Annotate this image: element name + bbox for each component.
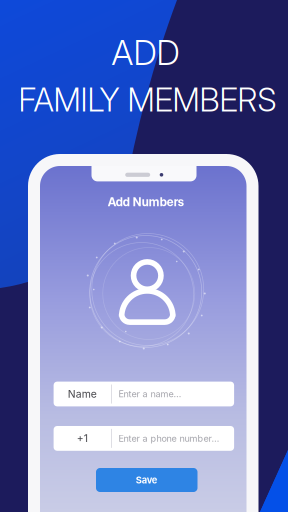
button[interactable]: +1 [54, 426, 234, 451]
staticText: FAMILY MEMBERS [18, 80, 276, 119]
staticText: +1 [77, 432, 88, 445]
button[interactable]: Name [54, 382, 234, 406]
staticText: Enter a phone number… [118, 433, 219, 444]
staticText: Name [68, 388, 97, 400]
staticText: ADD [111, 32, 179, 73]
staticText: Enter a name… [118, 388, 181, 399]
staticText: Save [136, 474, 158, 486]
button[interactable]: Save [96, 468, 197, 492]
staticText: Add Numbers [108, 195, 184, 209]
